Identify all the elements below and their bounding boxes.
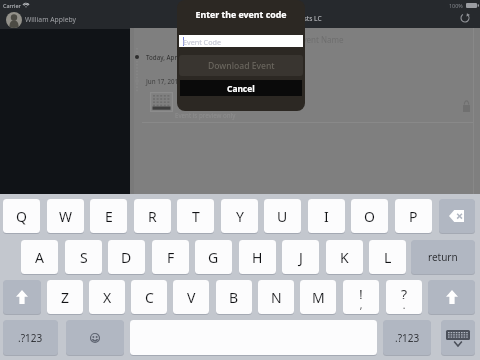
staticText: S bbox=[80, 248, 88, 267]
button[interactable]: Hide keyboard bbox=[441, 320, 475, 355]
button[interactable]: H bbox=[239, 240, 276, 274]
staticText: R bbox=[148, 207, 157, 226]
staticText: Event Name bbox=[298, 34, 344, 45]
button[interactable]: M bbox=[300, 280, 336, 314]
button[interactable]: P bbox=[395, 199, 432, 233]
staticText: X bbox=[103, 288, 112, 307]
button[interactable]: V bbox=[173, 280, 209, 314]
staticText: Download Event bbox=[208, 60, 275, 72]
button[interactable]: O bbox=[351, 199, 388, 233]
button[interactable]: Event Code bbox=[179, 35, 303, 47]
button[interactable]: Backspace bbox=[439, 199, 475, 233]
staticText: I bbox=[324, 207, 329, 226]
staticText: T bbox=[192, 207, 200, 226]
staticText: D bbox=[121, 248, 132, 267]
staticText: V bbox=[187, 288, 196, 307]
staticText: Carrier bbox=[3, 2, 33, 10]
button[interactable]: Q bbox=[3, 199, 40, 233]
button[interactable]: F bbox=[152, 240, 189, 274]
button[interactable]: return bbox=[411, 240, 475, 274]
button[interactable]: Shift bbox=[3, 280, 41, 314]
staticText: K bbox=[340, 248, 349, 267]
button[interactable]: Cancel bbox=[180, 80, 302, 96]
button[interactable]: E bbox=[90, 199, 127, 233]
button[interactable]: .?123 bbox=[383, 320, 431, 355]
staticText: H bbox=[252, 248, 263, 267]
button[interactable]: I bbox=[308, 199, 345, 233]
staticText: P bbox=[409, 207, 418, 226]
staticText: A bbox=[35, 248, 44, 267]
staticText: . bbox=[386, 298, 422, 310]
staticText: Jun 17, 2015 bbox=[146, 77, 226, 87]
staticText: ? bbox=[386, 285, 422, 299]
staticText: .?123 bbox=[18, 331, 43, 345]
button[interactable]: .?123 bbox=[3, 320, 58, 355]
staticText: U bbox=[277, 207, 288, 226]
button[interactable]: Download Event bbox=[179, 55, 303, 76]
staticText: Cancel bbox=[227, 83, 255, 94]
staticText: F bbox=[167, 248, 175, 267]
staticText: O bbox=[364, 207, 375, 226]
button[interactable]: C bbox=[131, 280, 167, 314]
button[interactable]: S bbox=[65, 240, 102, 274]
staticText: 100% bbox=[449, 2, 469, 10]
button[interactable]: L bbox=[369, 240, 406, 274]
button[interactable]: Emoji bbox=[66, 320, 124, 355]
button[interactable]: Y bbox=[221, 199, 258, 233]
button[interactable]: B bbox=[216, 280, 252, 314]
button[interactable]: U bbox=[264, 199, 301, 233]
button[interactable]: J bbox=[282, 240, 319, 274]
button[interactable]: N bbox=[258, 280, 294, 314]
button[interactable]: W bbox=[47, 199, 84, 233]
staticText: M bbox=[312, 288, 325, 307]
staticText: .?123 bbox=[395, 331, 420, 345]
staticText: Y bbox=[236, 207, 244, 226]
staticText: return bbox=[428, 250, 458, 264]
button[interactable]: K bbox=[326, 240, 363, 274]
staticText: B bbox=[229, 288, 239, 307]
staticText: Today, April 2 bbox=[146, 53, 226, 63]
staticText: Q bbox=[16, 207, 27, 226]
staticText: E bbox=[105, 207, 113, 226]
button[interactable]: G bbox=[195, 240, 232, 274]
staticText: W bbox=[59, 207, 73, 226]
button[interactable]: Refresh bbox=[456, 9, 473, 26]
button[interactable]: Shift bbox=[428, 280, 475, 314]
button[interactable]: D bbox=[108, 240, 145, 274]
staticText: N bbox=[271, 288, 282, 307]
staticText: William Appleby bbox=[25, 15, 125, 27]
staticText: , bbox=[343, 298, 379, 310]
staticText: G bbox=[208, 248, 219, 267]
staticText: Event Code bbox=[183, 37, 221, 47]
staticText: C bbox=[145, 288, 154, 307]
button[interactable]: ? bbox=[386, 280, 422, 314]
staticText: ! bbox=[343, 285, 379, 299]
button[interactable]: A bbox=[21, 240, 58, 274]
button[interactable]: Z bbox=[47, 280, 83, 314]
button[interactable]: X bbox=[89, 280, 125, 314]
staticText: Battery Tests LC bbox=[197, 14, 397, 26]
staticText: L bbox=[384, 248, 392, 267]
staticText: J bbox=[299, 248, 303, 267]
button[interactable]: ! bbox=[343, 280, 379, 314]
staticText: Z bbox=[61, 288, 70, 307]
staticText: Enter the event code bbox=[177, 9, 305, 22]
button[interactable]: R bbox=[134, 199, 171, 233]
button[interactable]: T bbox=[177, 199, 214, 233]
